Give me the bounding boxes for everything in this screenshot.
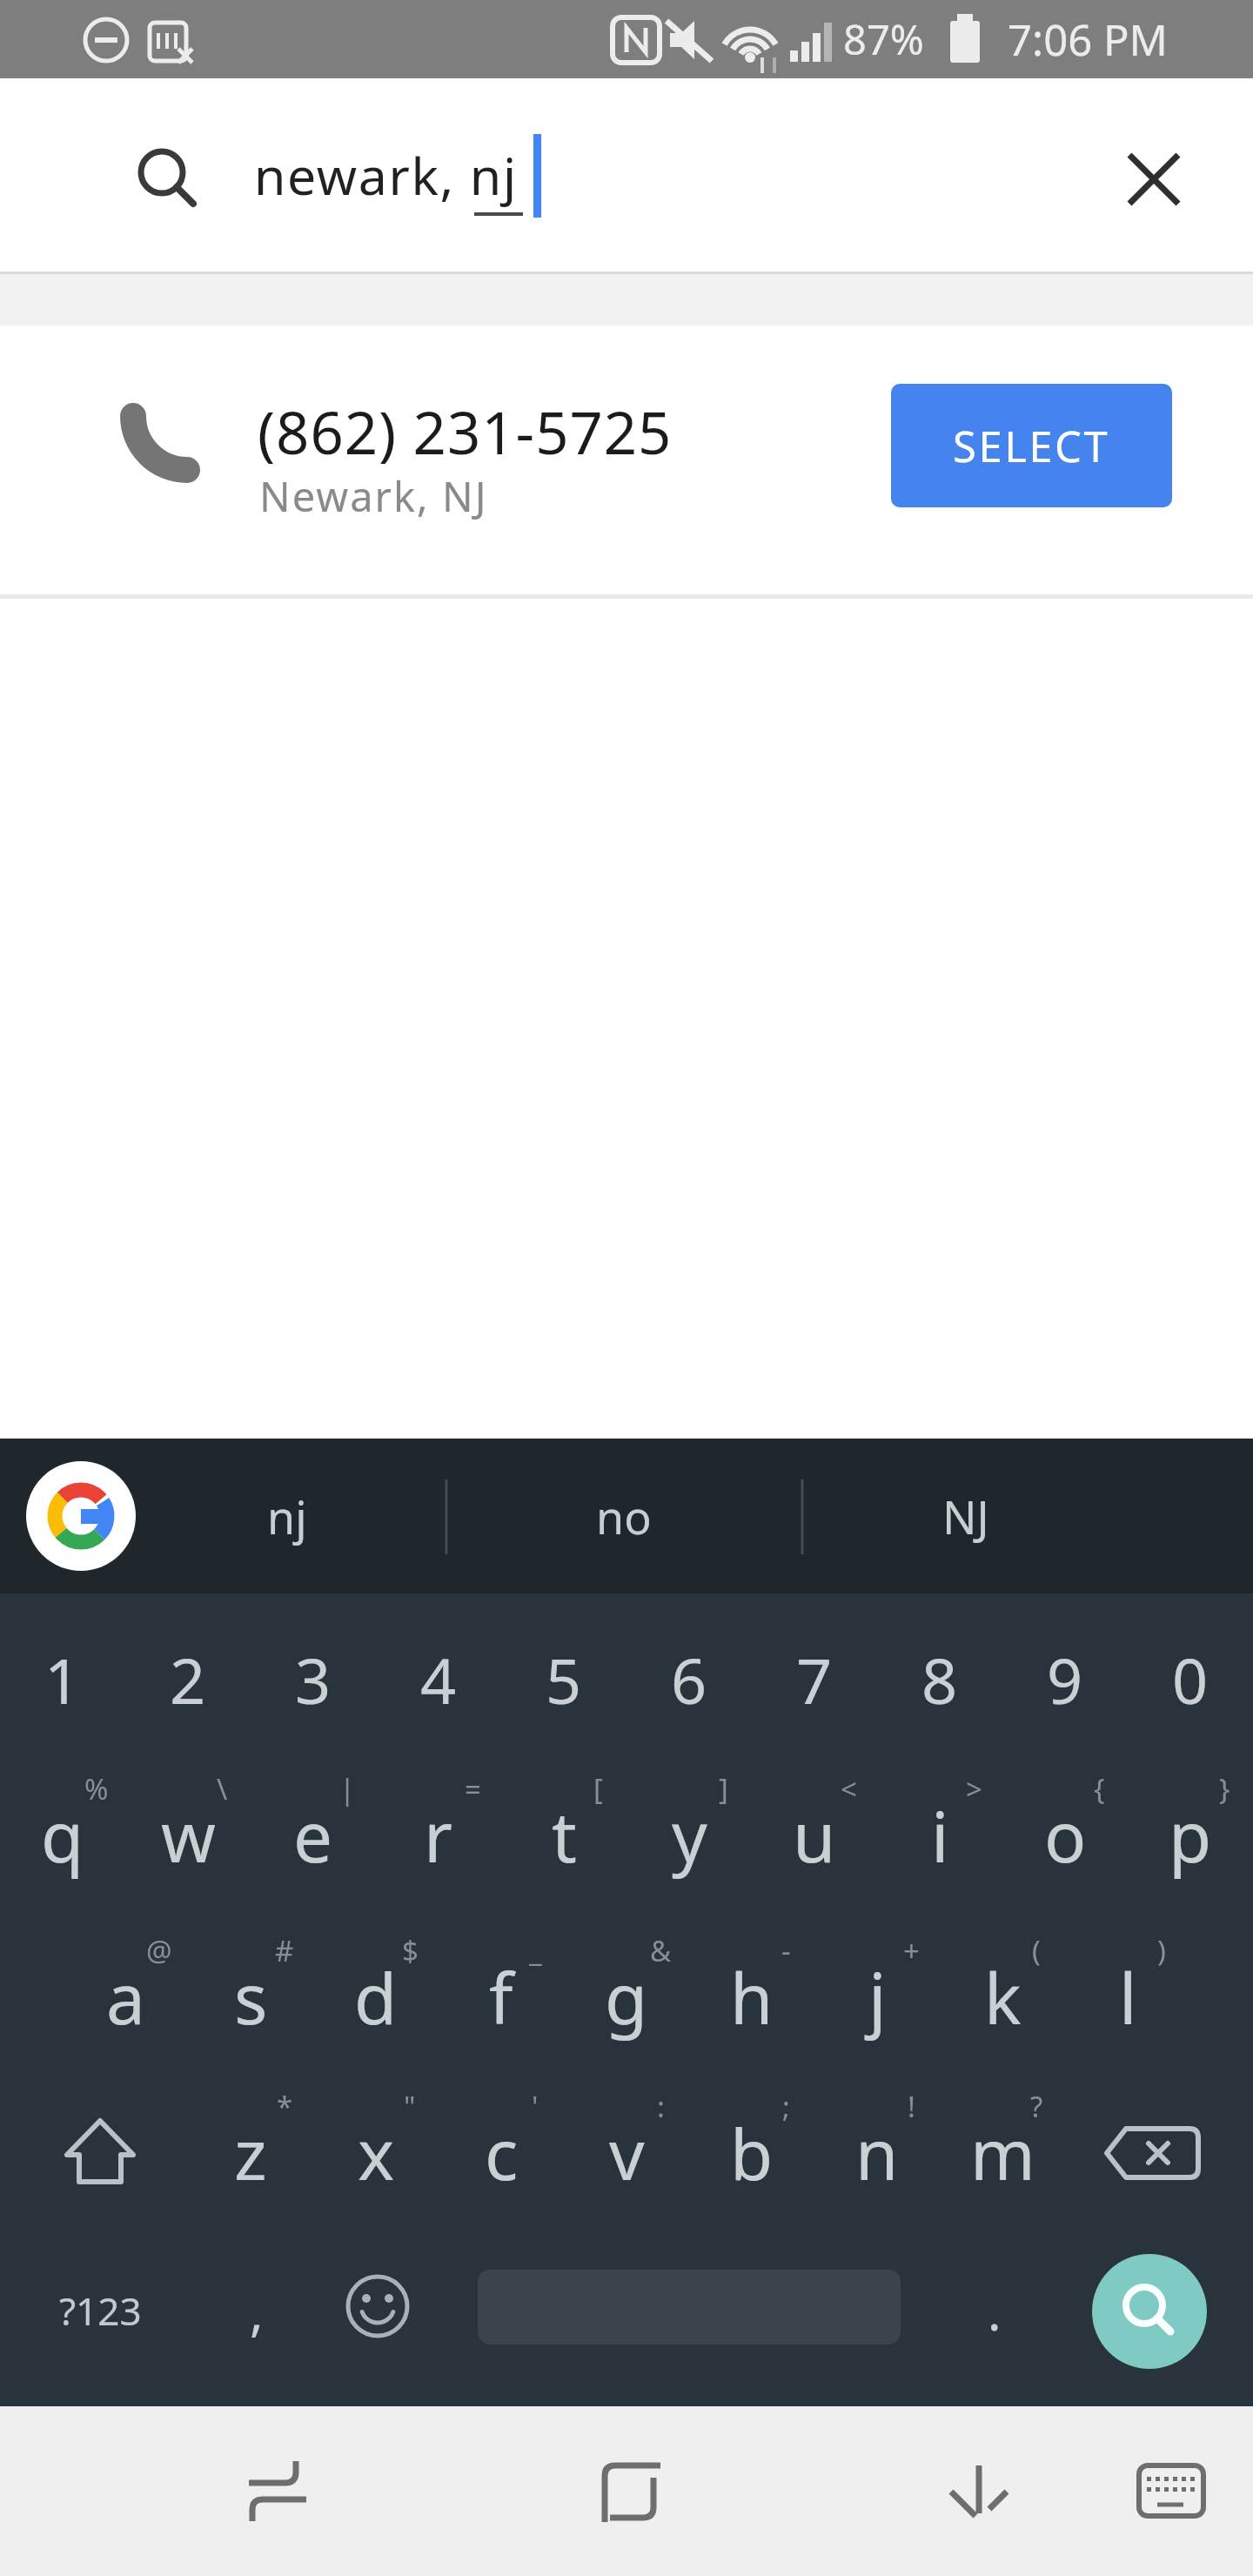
staticText: ?123 bbox=[59, 2284, 142, 2337]
button[interactable]: 8 bbox=[877, 1606, 1002, 1754]
button[interactable]: w bbox=[125, 1761, 251, 1909]
button[interactable]: h bbox=[689, 1922, 814, 2070]
staticText: q bbox=[41, 1788, 84, 1882]
staticText: t bbox=[552, 1788, 577, 1882]
staticText: + bbox=[903, 1931, 920, 1970]
button[interactable]: f bbox=[439, 1922, 564, 2070]
staticText: f bbox=[489, 1949, 513, 2044]
staticText: ] bbox=[719, 1769, 728, 1808]
staticText: 1 bbox=[44, 1637, 81, 1722]
button[interactable]: b bbox=[689, 2078, 814, 2226]
button[interactable]: g bbox=[564, 1922, 689, 2070]
staticText: { bbox=[1094, 1769, 1105, 1808]
button[interactable] bbox=[916, 2428, 1042, 2553]
button[interactable] bbox=[37, 2078, 163, 2226]
button[interactable] bbox=[1092, 2078, 1217, 2226]
button[interactable]: p bbox=[1128, 1761, 1253, 1909]
staticText: k bbox=[984, 1949, 1022, 2044]
button[interactable]: 9 bbox=[1002, 1606, 1128, 1754]
button[interactable] bbox=[220, 2428, 345, 2553]
staticText: > bbox=[966, 1769, 982, 1808]
button[interactable]: (862) 231-5725 bbox=[0, 325, 1253, 594]
staticText: v bbox=[609, 2105, 645, 2200]
button[interactable]: 1 bbox=[0, 1606, 125, 1754]
button[interactable]: u bbox=[752, 1761, 877, 1909]
button[interactable] bbox=[315, 2237, 440, 2385]
staticText: & bbox=[650, 1931, 672, 1970]
staticText: SELECT bbox=[953, 417, 1110, 475]
button[interactable]: 5 bbox=[501, 1606, 626, 1754]
button[interactable]: e bbox=[251, 1761, 376, 1909]
button[interactable]: t bbox=[501, 1761, 626, 1909]
button[interactable]: j bbox=[814, 1922, 940, 2070]
staticText: nj bbox=[267, 1486, 307, 1547]
staticText: a bbox=[106, 1949, 145, 2044]
staticText: 2 bbox=[170, 1637, 206, 1722]
button[interactable]: 6 bbox=[626, 1606, 752, 1754]
staticText: ( bbox=[1032, 1931, 1041, 1970]
staticText: ! bbox=[908, 2087, 915, 2126]
button[interactable]: y bbox=[626, 1761, 752, 1909]
button[interactable]: i bbox=[877, 1761, 1002, 1909]
button[interactable]: newark, nj bbox=[254, 78, 776, 272]
button[interactable]: nj bbox=[174, 1439, 400, 1593]
button[interactable]: k bbox=[940, 1922, 1065, 2070]
staticText: - bbox=[781, 1931, 791, 1970]
button[interactable]: 3 bbox=[251, 1606, 376, 1754]
staticText: p bbox=[1169, 1788, 1212, 1882]
button[interactable]: s bbox=[188, 1922, 313, 2070]
button[interactable]: . bbox=[932, 2237, 1057, 2385]
staticText: ' bbox=[532, 2087, 539, 2126]
button[interactable]: SELECT bbox=[891, 384, 1172, 507]
staticText: r bbox=[424, 1788, 453, 1882]
staticText: d bbox=[354, 1949, 398, 2044]
button[interactable]: NJ bbox=[853, 1439, 1079, 1593]
staticText: 6 bbox=[671, 1637, 707, 1722]
staticText: b bbox=[730, 2105, 774, 2200]
staticText: ; bbox=[782, 2087, 790, 2126]
button[interactable] bbox=[1092, 2254, 1207, 2369]
staticText: 7:06 PM bbox=[1008, 10, 1169, 69]
button[interactable]: , bbox=[194, 2237, 319, 2385]
button[interactable] bbox=[1109, 2428, 1234, 2553]
button[interactable]: d bbox=[313, 1922, 439, 2070]
staticText: 9 bbox=[1047, 1637, 1083, 1722]
staticText: : bbox=[657, 2087, 665, 2126]
button[interactable]: ?123 bbox=[37, 2237, 163, 2385]
button[interactable]: 4 bbox=[376, 1606, 501, 1754]
button[interactable] bbox=[566, 2428, 691, 2553]
staticText: c bbox=[485, 2105, 519, 2200]
staticText: % bbox=[84, 1769, 109, 1808]
staticText: l bbox=[1119, 1949, 1137, 2044]
staticText: i bbox=[931, 1788, 949, 1882]
staticText: j bbox=[868, 1949, 887, 2044]
button[interactable]: c bbox=[439, 2078, 564, 2226]
staticText: = bbox=[465, 1769, 481, 1808]
button[interactable]: 2 bbox=[125, 1606, 251, 1754]
button[interactable]: 0 bbox=[1128, 1606, 1253, 1754]
button[interactable]: 7 bbox=[752, 1606, 877, 1754]
button[interactable]: r bbox=[376, 1761, 501, 1909]
button[interactable]: q bbox=[0, 1761, 125, 1909]
staticText: 4 bbox=[420, 1637, 457, 1722]
button[interactable]: v bbox=[564, 2078, 689, 2226]
button[interactable] bbox=[1098, 141, 1209, 252]
staticText: < bbox=[841, 1769, 857, 1808]
staticText: , bbox=[250, 2277, 264, 2345]
button[interactable]: z bbox=[188, 2078, 313, 2226]
button[interactable]: m bbox=[940, 2078, 1065, 2226]
staticText: . bbox=[988, 2277, 1002, 2345]
staticText: [ bbox=[593, 1769, 603, 1808]
button[interactable]: n bbox=[814, 2078, 940, 2226]
button[interactable] bbox=[26, 1461, 136, 1571]
button[interactable]: a bbox=[63, 1922, 188, 2070]
staticText: (862) 231-5725 bbox=[258, 392, 673, 470]
staticText: 8 bbox=[921, 1637, 958, 1722]
button[interactable]: x bbox=[313, 2078, 439, 2226]
button[interactable]: l bbox=[1065, 1922, 1190, 2070]
staticText: x bbox=[358, 2105, 395, 2200]
staticText: s bbox=[234, 1949, 268, 2044]
button[interactable]: no bbox=[511, 1439, 737, 1593]
button[interactable]: o bbox=[1002, 1761, 1128, 1909]
